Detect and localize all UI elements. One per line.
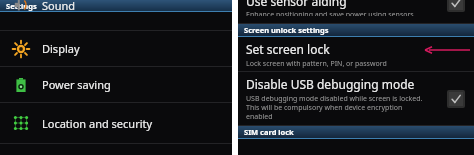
- staticText: SIM card lock: [244, 127, 294, 137]
- button[interactable]: Display: [0, 31, 232, 66]
- button[interactable]: Location and security: [0, 103, 232, 143]
- button[interactable]: Power saving: [0, 67, 232, 102]
- staticText: Settings: [6, 1, 37, 11]
- button[interactable]: Disable USB debugging mode: [246, 76, 427, 121]
- staticText: Display: [42, 41, 80, 56]
- staticText: Screen unlock settings: [244, 25, 329, 35]
- staticText: Use sensor aiding: [246, 0, 347, 9]
- button[interactable]: Sound: [0, 0, 232, 14]
- staticText: Sound: [42, 0, 76, 13]
- staticText: Lock screen with pattern, PIN, or passwo…: [246, 59, 387, 69]
- staticText: Enhance positioning and save power using…: [246, 10, 414, 16]
- staticText: Set screen lock: [246, 41, 330, 57]
- staticText: USB debugging mode disabled while screen…: [246, 94, 427, 121]
- staticText: Power saving: [42, 77, 111, 92]
- staticText: Disable USB debugging mode: [246, 76, 415, 92]
- button[interactable]: Use sensor aiding: [238, 0, 474, 16]
- other: Disable USB debugging checkbox: [447, 90, 465, 108]
- other: Use sensor aiding checkbox: [447, 0, 465, 12]
- staticText: Location and security: [42, 116, 153, 131]
- button[interactable]: Set screen lock: [246, 41, 474, 71]
